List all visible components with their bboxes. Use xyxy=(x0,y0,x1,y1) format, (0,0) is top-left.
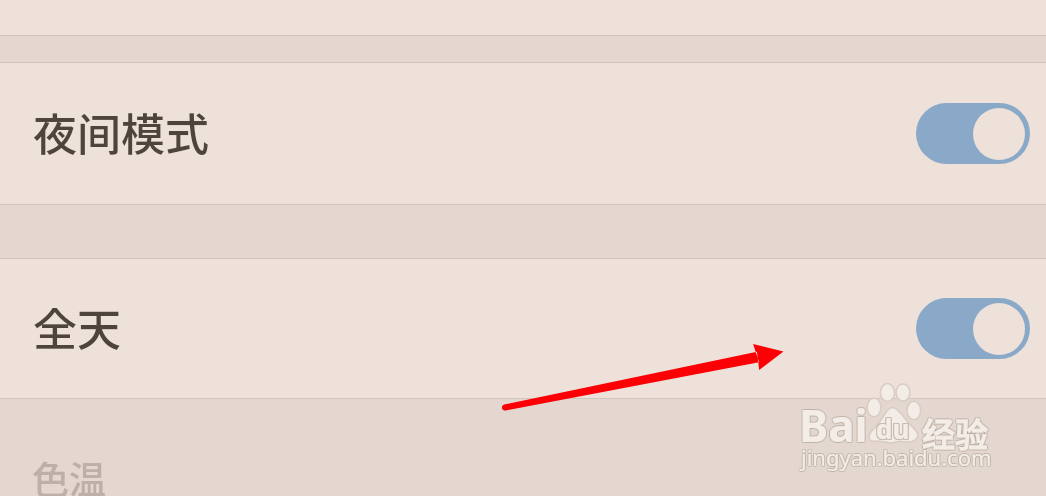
staticText: 经验 xyxy=(922,410,988,458)
staticText: du xyxy=(876,410,910,445)
staticText: du xyxy=(877,410,911,445)
staticText: 经验 xyxy=(921,409,987,457)
staticText: Bai xyxy=(798,396,867,456)
staticText: 夜间模式 xyxy=(33,100,209,164)
staticText: 色温 xyxy=(32,451,106,496)
staticText: Bai xyxy=(800,395,869,455)
staticText: 经验 xyxy=(921,408,987,456)
staticText: 经验 xyxy=(923,409,989,457)
staticText: jingyan.baidu.com xyxy=(802,442,993,472)
staticText: du xyxy=(875,412,909,447)
staticText: 经验 xyxy=(923,408,989,456)
staticText: Bai xyxy=(800,394,869,454)
staticText: du xyxy=(876,411,910,446)
staticText: 经验 xyxy=(921,410,987,458)
staticText: jingyan.baidu.com xyxy=(800,441,991,471)
staticText: Bai xyxy=(800,396,869,456)
staticText: jingyan.baidu.com xyxy=(802,443,993,473)
staticText: jingyan.baidu.com xyxy=(802,441,993,471)
staticText: jingyan.baidu.com xyxy=(800,442,991,472)
staticText: 经验 xyxy=(922,409,988,457)
staticText: du xyxy=(876,412,910,447)
staticText: du xyxy=(877,411,911,446)
staticText: du xyxy=(877,412,911,447)
button[interactable]: 全天 xyxy=(0,259,1046,398)
staticText: jingyan.baidu.com xyxy=(801,441,992,471)
staticText: Bai xyxy=(798,394,867,454)
button[interactable]: Toggle 全天 xyxy=(916,298,1030,359)
staticText: jingyan.baidu.com xyxy=(800,443,991,473)
button[interactable]: 夜间模式 xyxy=(0,63,1046,204)
staticText: jingyan.baidu.com xyxy=(801,442,992,472)
staticText: 全天 xyxy=(33,295,121,359)
button[interactable]: Toggle 夜间模式 xyxy=(916,103,1030,164)
staticText: jingyan.baidu.com xyxy=(801,443,992,473)
staticText: du xyxy=(875,411,909,446)
staticText: du xyxy=(875,410,909,445)
staticText: Bai xyxy=(799,395,868,455)
staticText: Bai xyxy=(799,394,868,454)
staticText: 经验 xyxy=(923,410,989,458)
staticText: Bai xyxy=(798,395,867,455)
staticText: Bai xyxy=(799,396,868,456)
staticText: 经验 xyxy=(922,408,988,456)
